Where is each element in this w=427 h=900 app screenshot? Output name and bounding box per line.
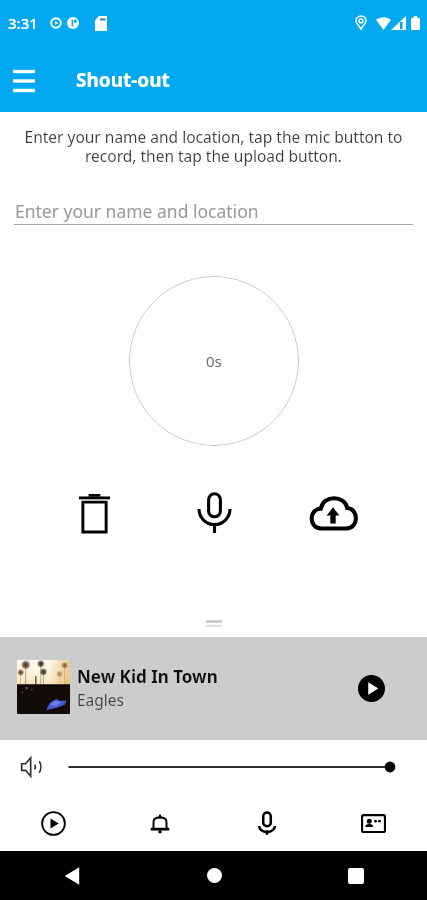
button[interactable]: Notifications — [106, 795, 213, 851]
button[interactable]: Menu — [1, 58, 46, 103]
button[interactable]: Home — [143, 851, 285, 900]
staticText: 3:31 — [8, 13, 38, 33]
button[interactable]: Play — [0, 795, 106, 851]
button[interactable]: Recording timer — [129, 276, 299, 446]
staticText: Enter your name and location, tap the mi… — [10, 126, 417, 166]
button[interactable]: Recents — [285, 851, 427, 900]
staticText: Enter your name and location — [15, 199, 259, 223]
staticText: 0s — [206, 351, 222, 371]
button[interactable]: Record — [213, 795, 320, 851]
button[interactable]: Contacts — [320, 795, 427, 851]
staticText: New Kid In Town — [77, 665, 218, 688]
staticText: Shout-out — [76, 67, 170, 93]
button[interactable]: Upload — [309, 488, 358, 537]
button[interactable]: Back — [0, 851, 143, 900]
button[interactable]: Record — [190, 488, 239, 537]
button[interactable]: Delete recording — [70, 488, 119, 537]
button[interactable]: New Kid In Town — [0, 637, 427, 740]
button[interactable]: Play — [352, 669, 390, 707]
button[interactable]: Volume — [21, 756, 43, 778]
staticText: Eagles — [77, 689, 125, 710]
